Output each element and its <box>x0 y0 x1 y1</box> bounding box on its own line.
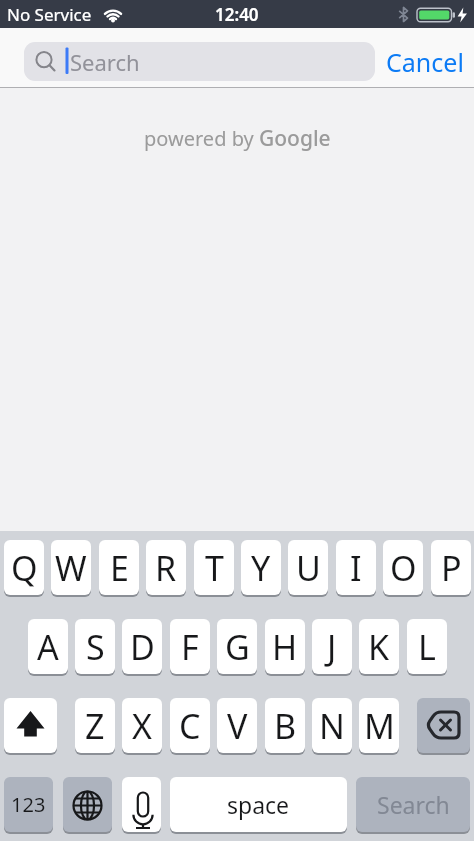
button[interactable]: N <box>312 698 352 755</box>
staticText: R <box>155 545 177 591</box>
staticText: Google <box>259 124 331 153</box>
button[interactable]: Search <box>356 777 470 834</box>
staticText: space <box>227 789 290 820</box>
staticText: No Service <box>7 3 92 26</box>
staticText: J <box>327 624 337 670</box>
button[interactable]: W <box>51 540 91 597</box>
staticText: O <box>390 545 417 591</box>
button[interactable]: B <box>265 698 305 755</box>
button[interactable]: X <box>122 698 162 755</box>
button[interactable] <box>4 698 57 755</box>
staticText: Z <box>85 703 105 749</box>
button[interactable]: 123 <box>4 777 53 834</box>
button[interactable]: K <box>359 619 399 676</box>
staticText: L <box>418 624 436 670</box>
staticText: X <box>132 703 152 749</box>
staticText: G <box>225 624 250 670</box>
staticText: D <box>130 624 155 670</box>
button[interactable]: Z <box>75 698 115 755</box>
button[interactable]: R <box>146 540 186 597</box>
staticText: U <box>296 545 321 591</box>
staticText: Q <box>11 545 38 591</box>
button[interactable]: F <box>170 619 210 676</box>
button[interactable] <box>122 777 161 834</box>
button[interactable]: P <box>431 540 471 597</box>
staticText: W <box>55 545 87 591</box>
button[interactable]: space <box>170 777 347 834</box>
staticText: T <box>205 545 224 591</box>
staticText: N <box>319 703 345 749</box>
button[interactable]: L <box>407 619 447 676</box>
button[interactable]: Y <box>241 540 281 597</box>
button[interactable]: H <box>265 619 305 676</box>
staticText: Search <box>377 789 450 820</box>
button[interactable]: Q <box>4 540 44 597</box>
staticText: B <box>274 703 297 749</box>
staticText: powered by <box>144 125 259 152</box>
staticText: K <box>368 624 390 670</box>
staticText: Cancel <box>386 45 464 79</box>
button[interactable] <box>417 698 470 755</box>
button[interactable]: G <box>217 619 257 676</box>
staticText: I <box>350 545 362 591</box>
button[interactable]: J <box>312 619 352 676</box>
button[interactable]: D <box>122 619 162 676</box>
button[interactable]: U <box>288 540 328 597</box>
button[interactable]: Search <box>24 42 375 81</box>
staticText: H <box>272 624 298 670</box>
staticText: 12:40 <box>215 3 259 26</box>
button[interactable]: C <box>170 698 210 755</box>
button[interactable]: I <box>336 540 376 597</box>
button[interactable]: T <box>194 540 234 597</box>
staticText: Y <box>251 545 271 591</box>
staticText: P <box>441 545 462 591</box>
staticText: E <box>110 545 129 591</box>
button[interactable]: A <box>28 619 68 676</box>
staticText: F <box>181 624 199 670</box>
staticText: Search <box>70 47 140 77</box>
staticText: 123 <box>11 791 46 818</box>
button[interactable] <box>63 777 112 834</box>
button[interactable]: V <box>217 698 257 755</box>
button[interactable]: O <box>383 540 423 597</box>
staticText: A <box>37 624 59 670</box>
button[interactable]: M <box>359 698 399 755</box>
button[interactable]: E <box>99 540 139 597</box>
button[interactable]: Cancel <box>381 42 469 81</box>
staticText: C <box>179 703 201 749</box>
staticText: M <box>364 703 395 749</box>
staticText: S <box>86 624 105 670</box>
button[interactable]: S <box>75 619 115 676</box>
staticText: V <box>227 703 248 749</box>
